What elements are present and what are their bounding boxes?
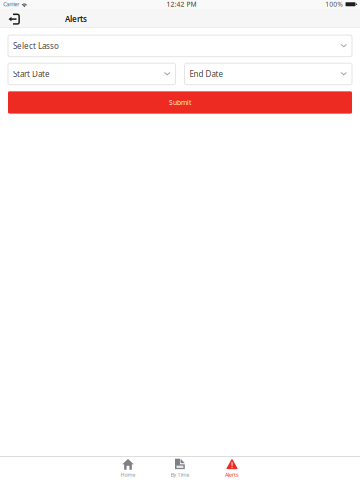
staticText: Start Date [13, 69, 50, 79]
button[interactable]: Log out [4, 8, 25, 27]
button[interactable]: Alerts [206, 457, 258, 480]
staticText: Alerts [65, 13, 87, 24]
button[interactable]: Home [102, 457, 154, 480]
staticText: 12:42 PM [166, 0, 196, 9]
staticText: By Time [170, 471, 189, 478]
staticText: End Date [189, 69, 223, 79]
staticText: Submit [169, 98, 191, 107]
button[interactable]: Select Lasso [8, 35, 352, 57]
staticText: Alerts [225, 471, 239, 478]
staticText: Home [120, 471, 135, 478]
button[interactable]: End Date [184, 63, 352, 85]
staticText: 100% [325, 0, 343, 9]
staticText: Carrier [3, 1, 19, 8]
button[interactable]: Submit [8, 91, 352, 114]
button[interactable]: By Time [154, 457, 206, 480]
button[interactable]: Start Date [8, 63, 175, 85]
staticText: Select Lasso [13, 40, 59, 51]
